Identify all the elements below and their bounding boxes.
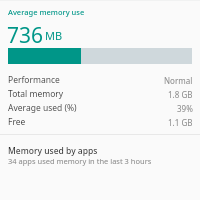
staticText: 736 [7,21,44,50]
button[interactable]: Memory used by apps [0,136,200,174]
staticText: Free [8,116,26,128]
staticText: 34 apps used memory in the last 3 hours [8,156,152,166]
staticText: Memory used by apps [8,145,98,157]
button[interactable]: Average used (%) [0,101,200,115]
staticText: 1.8 GB [168,89,193,100]
staticText: 39% [177,103,193,114]
staticText: Average used (%) [8,102,77,114]
other: Memory usage 39 percent [8,48,192,64]
button[interactable]: Performance [0,73,200,87]
staticText: Total memory [8,88,64,100]
staticText: MB [45,28,63,43]
button[interactable]: Free [0,115,200,129]
staticText: Average memory use [8,7,85,17]
button[interactable]: Total memory [0,87,200,101]
staticText: Normal [164,75,193,86]
staticText: Performance [8,74,60,86]
staticText: 1.1 GB [168,117,193,128]
